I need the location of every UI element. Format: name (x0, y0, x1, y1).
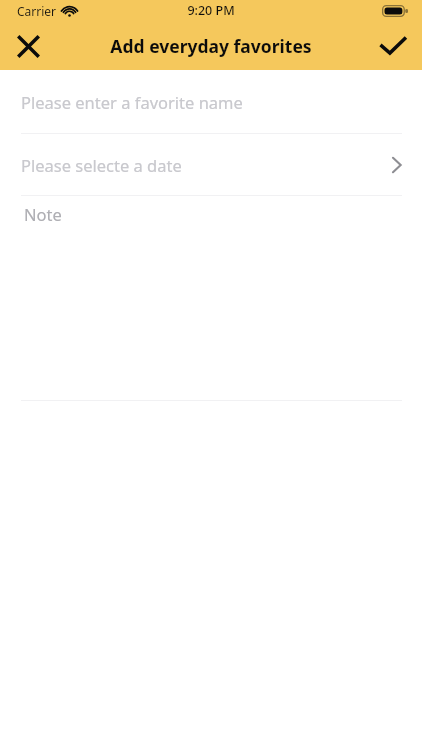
button[interactable]: Please selecte a date (0, 134, 422, 195)
staticText: Carrier (17, 3, 57, 19)
button[interactable]: Please enter a favorite name (0, 70, 422, 133)
staticText: Add everyday favorites (110, 34, 312, 58)
button[interactable]: Save (364, 22, 422, 70)
staticText: 9:20 PM (187, 2, 235, 19)
staticText: Please enter a favorite name (21, 91, 243, 113)
button[interactable]: Note (0, 196, 422, 400)
button[interactable]: Close (0, 22, 56, 70)
staticText: Note (24, 203, 62, 225)
staticText: Please selecte a date (21, 154, 182, 176)
